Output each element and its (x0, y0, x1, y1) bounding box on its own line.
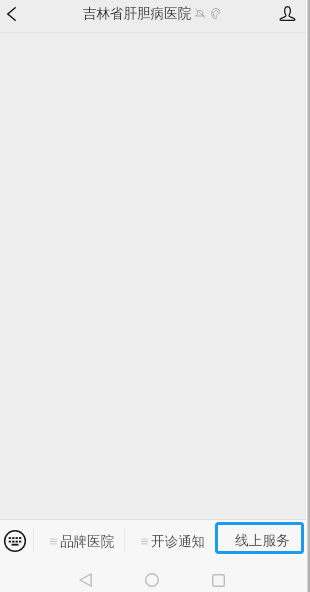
staticText: 吉林省肝胆病医院 (83, 5, 191, 22)
button[interactable]: Keyboard (0, 521, 30, 561)
button[interactable]: Back (65, 564, 105, 592)
button[interactable]: Recent apps (198, 564, 238, 592)
button[interactable]: Contacts (272, 0, 302, 27)
button[interactable]: 线上服务 (215, 522, 304, 554)
staticText: 开诊通知 (151, 533, 205, 550)
staticText: 线上服务 (235, 532, 290, 549)
button[interactable]: Home (132, 564, 172, 592)
staticText: 品牌医院 (60, 533, 114, 550)
button[interactable]: Back (0, 0, 22, 27)
button[interactable]: 品牌医院 (34, 521, 124, 561)
button[interactable]: 开诊通知 (125, 521, 215, 561)
